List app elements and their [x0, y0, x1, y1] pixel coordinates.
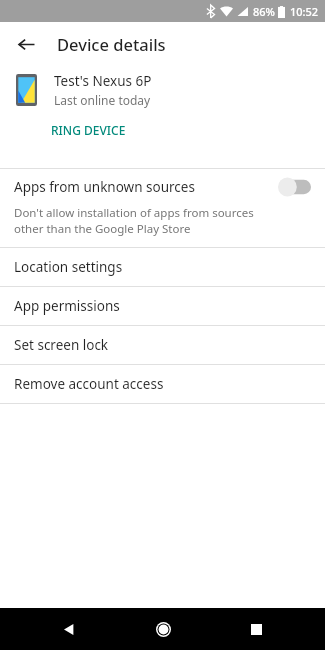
button[interactable]: Recent apps — [232, 608, 280, 650]
button[interactable]: Back — [10, 28, 42, 60]
staticText: 86% — [253, 4, 275, 19]
staticText: Location settings — [14, 258, 123, 276]
staticText: Device details — [57, 33, 166, 55]
button[interactable]: Set screen lock — [0, 326, 325, 364]
staticText: App permissions — [14, 297, 120, 315]
button[interactable]: Location settings — [0, 248, 325, 286]
staticText: Test's Nexus 6P — [54, 72, 152, 90]
staticText: RING DEVICE — [51, 122, 126, 138]
staticText: Don't allow installation of apps from so… — [14, 205, 283, 236]
staticText: Last online today — [54, 92, 151, 108]
button[interactable]: Back — [45, 608, 93, 650]
button[interactable]: Home — [139, 608, 187, 650]
staticText: Remove account access — [14, 375, 164, 393]
button[interactable]: App permissions — [0, 287, 325, 325]
button[interactable]: Test's Nexus 6P — [0, 66, 325, 114]
staticText: Set screen lock — [14, 336, 109, 354]
button[interactable]: RING DEVICE — [45, 118, 132, 142]
staticText: 10:52 — [290, 4, 319, 19]
staticText: Apps from unknown sources — [14, 178, 277, 196]
button[interactable]: Apps from unknown sources — [0, 169, 325, 247]
button[interactable]: Remove account access — [0, 365, 325, 403]
